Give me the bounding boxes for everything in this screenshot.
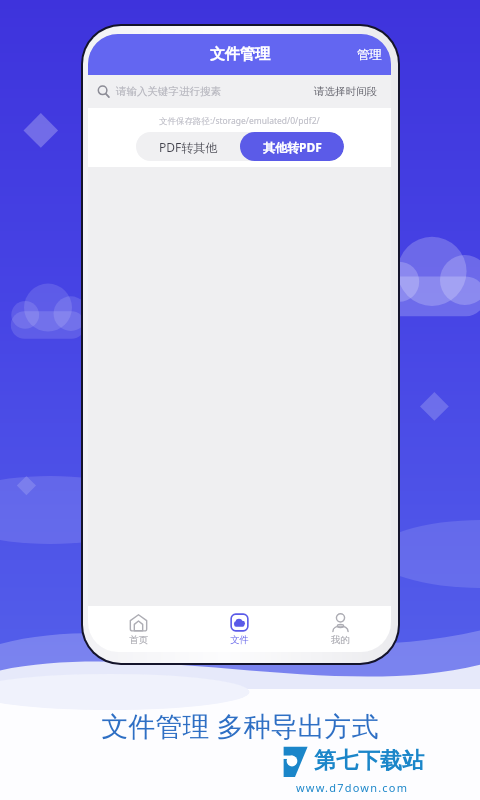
staticText: 我的 (331, 634, 350, 646)
staticText: 文件管理 多种导出方式 (101, 707, 379, 744)
staticText: 首页 (129, 634, 148, 646)
button[interactable]: Search (88, 75, 300, 108)
staticText: 请选择时间段 (314, 85, 377, 98)
other: Profile (331, 613, 350, 632)
staticText: 请输入关键字进行搜素 (116, 85, 221, 98)
button[interactable]: PDF转其他 (136, 132, 240, 161)
button[interactable]: Files (189, 606, 290, 652)
staticText: 文件 (230, 634, 249, 646)
staticText: 管理 (357, 47, 382, 63)
button[interactable]: 管理 (348, 34, 391, 75)
other: Home (129, 613, 148, 632)
button[interactable]: 请选择时间段 (300, 75, 391, 108)
staticText: 文件保存路径:/storage/emulated/0/pdf2/ (159, 115, 320, 127)
staticText: 文件管理 (210, 45, 270, 64)
button[interactable]: Profile (290, 606, 391, 652)
staticText: 其他转PDF (263, 139, 322, 155)
staticText: PDF转其他 (159, 139, 218, 155)
button[interactable]: 其他转PDF (240, 132, 344, 161)
staticText: www.d7down.com (296, 780, 409, 795)
other: Files (230, 613, 249, 632)
staticText: 第七下载站 (314, 747, 424, 775)
button[interactable]: Home (88, 606, 189, 652)
other: Search (97, 85, 110, 98)
